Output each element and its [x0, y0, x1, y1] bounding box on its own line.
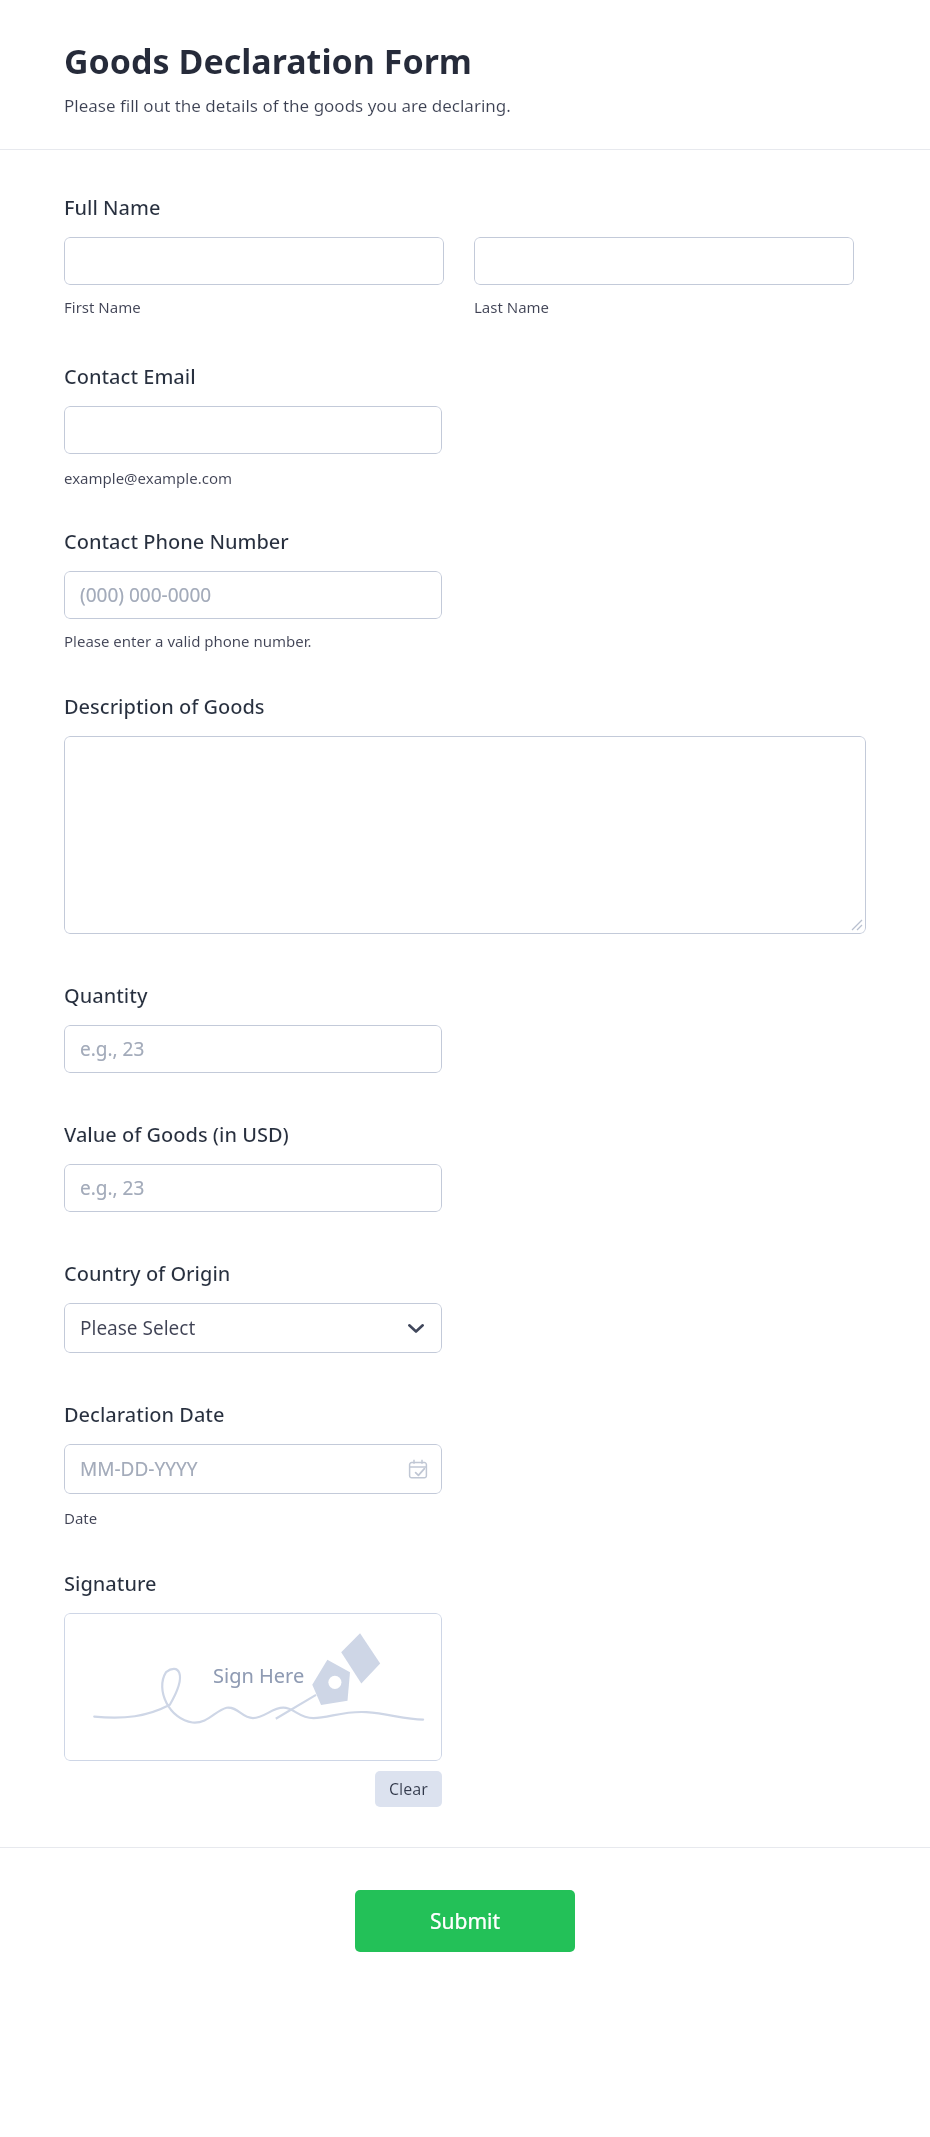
staticText: Goods Declaration Form — [64, 38, 472, 84]
button[interactable] — [64, 237, 444, 285]
staticText: Submit — [430, 1907, 501, 1936]
staticText: Country of Origin — [64, 1260, 231, 1287]
staticText: MM-DD-YYYY — [80, 1456, 198, 1482]
staticText: Declaration Date — [64, 1401, 225, 1428]
staticText: Full Name — [64, 194, 161, 221]
staticText: e.g., 23 — [80, 1175, 145, 1201]
staticText: Last Name — [474, 297, 550, 317]
button[interactable]: Submit — [355, 1890, 575, 1952]
button[interactable] — [474, 237, 854, 285]
staticText: Description of Goods — [64, 693, 265, 720]
button[interactable]: e.g., 23 — [64, 1025, 442, 1073]
staticText: (000) 000-0000 — [80, 582, 212, 608]
staticText: Date — [64, 1508, 98, 1528]
button[interactable]: Description of Goods — [64, 736, 866, 934]
button[interactable]: Please Select — [64, 1303, 442, 1353]
staticText: Sign Here — [213, 1662, 305, 1689]
staticText: Contact Email — [64, 363, 196, 390]
staticText: First Name — [64, 297, 141, 317]
staticText: Clear — [389, 1778, 428, 1800]
staticText: e.g., 23 — [80, 1036, 145, 1062]
staticText: Please fill out the details of the goods… — [64, 94, 511, 117]
button[interactable]: Pick date — [408, 1459, 428, 1479]
button[interactable] — [64, 406, 442, 454]
staticText: Quantity — [64, 982, 148, 1009]
staticText: Contact Phone Number — [64, 528, 289, 555]
button[interactable]: Clear — [375, 1771, 442, 1807]
button[interactable]: MM-DD-YYYY — [64, 1444, 442, 1494]
button[interactable]: e.g., 23 — [64, 1164, 442, 1212]
staticText: example@example.com — [64, 468, 232, 488]
staticText: Signature — [64, 1570, 157, 1597]
button[interactable]: (000) 000-0000 — [64, 571, 442, 619]
staticText: Please enter a valid phone number. — [64, 631, 312, 651]
staticText: Please Select — [80, 1315, 196, 1341]
staticText: Value of Goods (in USD) — [64, 1121, 289, 1148]
button[interactable]: Signature pad — [64, 1613, 442, 1761]
